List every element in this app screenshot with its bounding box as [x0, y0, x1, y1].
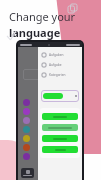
button[interactable]	[42, 113, 78, 120]
button[interactable]	[21, 168, 34, 178]
staticText: Aufgabe hinzufügen	[49, 63, 78, 67]
staticText: Kategorien	[49, 73, 66, 77]
button[interactable]: Aufgabe hinzufügen	[38, 60, 82, 70]
staticText: language	[9, 25, 61, 40]
other: Decoration	[68, 4, 77, 13]
button[interactable]	[42, 135, 78, 142]
button[interactable]	[41, 90, 79, 102]
button[interactable]: Aufgaben	[38, 50, 82, 60]
button[interactable]	[42, 146, 78, 153]
button[interactable]: Kategorien	[38, 70, 82, 80]
button[interactable]	[42, 124, 78, 131]
staticText: Change your	[9, 9, 76, 24]
staticText: Aufgaben	[49, 53, 64, 57]
